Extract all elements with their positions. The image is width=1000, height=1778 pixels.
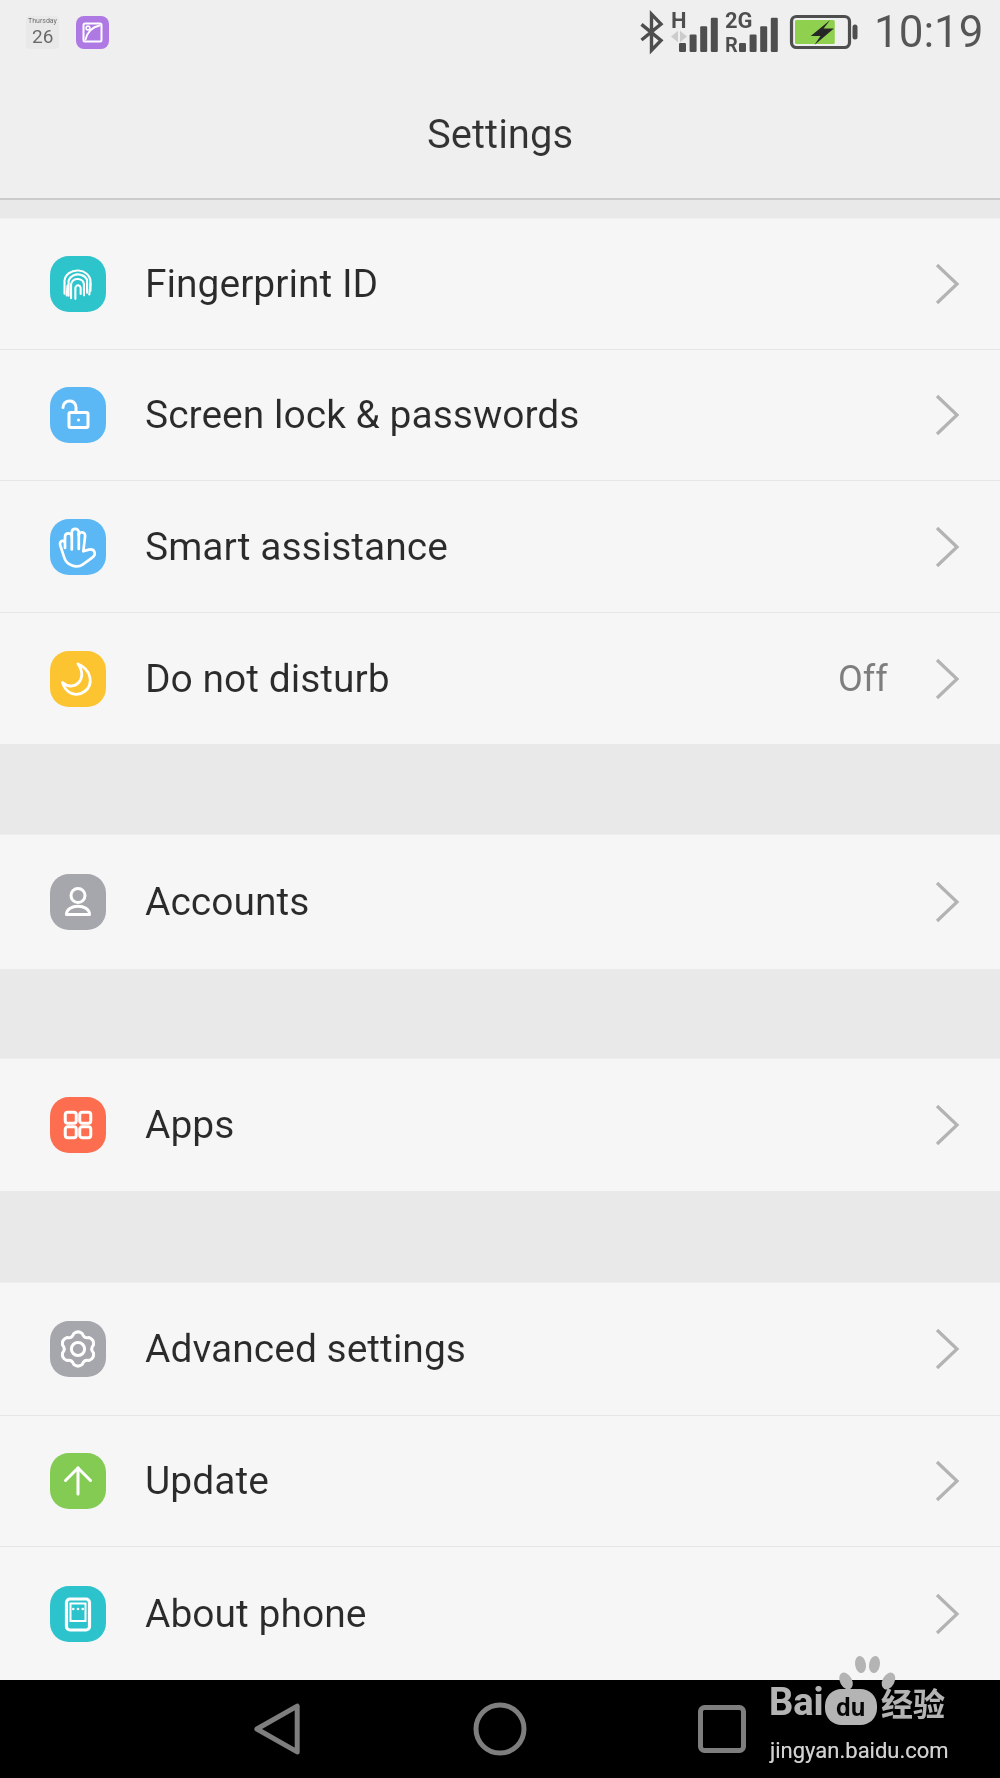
staticText: Settings bbox=[427, 111, 574, 158]
staticText: jingyan.baidu.com bbox=[770, 1738, 949, 1764]
button[interactable]: About phone bbox=[0, 1547, 1000, 1680]
button[interactable]: Recent apps bbox=[644, 1680, 800, 1778]
staticText: 2G bbox=[725, 8, 753, 34]
staticText: R bbox=[725, 33, 738, 56]
button[interactable]: Accounts bbox=[0, 835, 1000, 969]
staticText: 10:19 bbox=[874, 6, 984, 58]
staticText: Off bbox=[838, 658, 888, 700]
staticText: Screen lock & passwords bbox=[145, 392, 580, 438]
staticText: About phone bbox=[145, 1591, 367, 1637]
staticText: Thursday bbox=[28, 17, 57, 25]
staticText: 26 bbox=[32, 25, 54, 47]
staticText: H bbox=[671, 8, 687, 34]
staticText: Advanced settings bbox=[145, 1326, 466, 1372]
button[interactable]: Update bbox=[0, 1416, 1000, 1546]
button[interactable]: Fingerprint ID bbox=[0, 219, 1000, 349]
staticText: Update bbox=[145, 1458, 269, 1504]
staticText: du bbox=[836, 1692, 866, 1722]
staticText: Fingerprint ID bbox=[145, 261, 379, 307]
staticText: Do not disturb bbox=[145, 656, 390, 702]
staticText: Apps bbox=[145, 1102, 235, 1148]
button[interactable]: Apps bbox=[0, 1059, 1000, 1191]
staticText: 经验 bbox=[881, 1679, 946, 1725]
button[interactable]: Home bbox=[422, 1680, 578, 1778]
staticText: Smart assistance bbox=[145, 524, 448, 570]
button[interactable]: Do not disturb bbox=[0, 613, 1000, 744]
staticText: Bai bbox=[769, 1680, 824, 1725]
staticText: Accounts bbox=[145, 879, 310, 925]
button[interactable]: Smart assistance bbox=[0, 481, 1000, 612]
button[interactable]: Screen lock & passwords bbox=[0, 350, 1000, 480]
button[interactable]: Advanced settings bbox=[0, 1283, 1000, 1415]
button[interactable]: Back bbox=[200, 1680, 356, 1778]
